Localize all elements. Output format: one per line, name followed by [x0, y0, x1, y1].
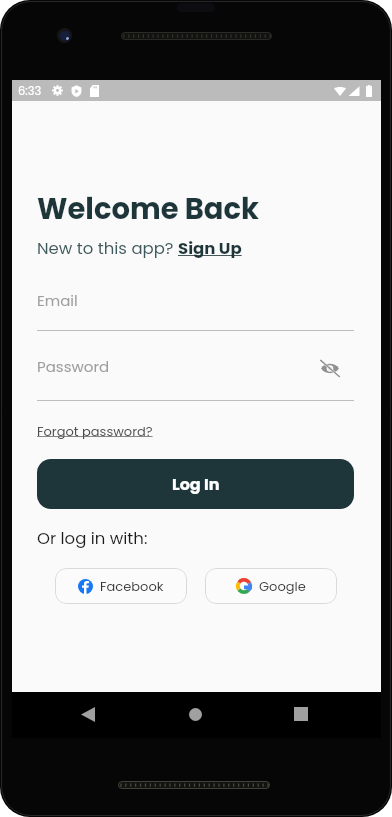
- button[interactable]: Facebook: [55, 568, 187, 604]
- button[interactable]: Google: [205, 568, 337, 604]
- button[interactable]: Log In: [37, 459, 354, 509]
- staticText: Welcome Back: [37, 189, 259, 230]
- button[interactable]: Back: [67, 693, 109, 735]
- staticText: Sign Up: [178, 237, 242, 260]
- button[interactable]: Password: [37, 356, 354, 401]
- staticText: New to this app?: [37, 237, 178, 260]
- staticText: 6:33: [18, 83, 42, 99]
- button[interactable]: Recent apps: [280, 693, 322, 735]
- staticText: Password: [37, 356, 110, 377]
- staticText: Google: [259, 577, 306, 595]
- staticText: Forgot password?: [37, 422, 153, 440]
- staticText: Facebook: [100, 577, 164, 595]
- staticText: Email: [37, 290, 78, 311]
- button[interactable]: Sign Up: [178, 237, 242, 260]
- button[interactable]: Show password: [317, 355, 343, 381]
- staticText: Or log in with:: [37, 527, 148, 550]
- staticText: Log In: [172, 473, 220, 495]
- button[interactable]: Forgot password?: [37, 422, 153, 440]
- button[interactable]: Email: [37, 290, 354, 331]
- button[interactable]: Home: [174, 693, 216, 735]
